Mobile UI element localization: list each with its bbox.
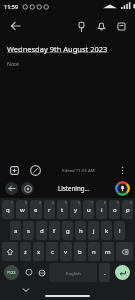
staticText: 6 xyxy=(78,201,80,205)
button[interactable]: c xyxy=(46,242,58,261)
staticText: e xyxy=(34,206,38,214)
staticText: x xyxy=(37,248,41,256)
staticText: m xyxy=(105,248,111,256)
staticText: d xyxy=(40,227,44,235)
button[interactable]: t xyxy=(57,200,68,219)
staticText: u xyxy=(87,206,91,214)
staticText: q xyxy=(6,206,10,214)
staticText: 2 xyxy=(25,201,27,205)
button[interactable]: Back xyxy=(6,17,24,35)
staticText: a xyxy=(14,227,18,235)
button[interactable]: Emoji xyxy=(23,263,34,282)
button[interactable]: f xyxy=(49,221,60,240)
button[interactable]: Colour xyxy=(27,162,43,178)
staticText: z xyxy=(24,248,27,256)
button[interactable]: p xyxy=(122,200,133,219)
staticText: l xyxy=(119,227,121,235)
button[interactable]: u xyxy=(83,200,94,219)
button[interactable]: Translate xyxy=(36,263,47,282)
staticText: . xyxy=(104,269,106,277)
other: Enter xyxy=(115,265,130,280)
button[interactable]: Microphone xyxy=(115,181,130,196)
button[interactable]: Close voice input xyxy=(5,182,18,195)
staticText: g xyxy=(66,227,70,235)
button[interactable]: n xyxy=(88,242,100,261)
button[interactable]: Shift xyxy=(2,242,18,261)
staticText: h xyxy=(79,227,83,235)
button[interactable]: Add xyxy=(6,162,22,178)
staticText: b xyxy=(78,248,82,256)
button[interactable]: Reminder xyxy=(93,18,109,34)
button[interactable]: a xyxy=(10,221,21,240)
staticText: 1 xyxy=(11,201,13,205)
staticText: k xyxy=(105,227,109,235)
staticText: r xyxy=(48,206,51,214)
button[interactable]: o xyxy=(109,200,120,219)
button[interactable]: q xyxy=(2,200,14,219)
button[interactable]: Pin xyxy=(73,18,89,34)
staticText: p xyxy=(126,206,130,214)
staticText: j xyxy=(93,227,95,235)
button[interactable]: m xyxy=(102,242,114,261)
button[interactable]: r xyxy=(44,200,55,219)
button[interactable]: . xyxy=(99,263,110,282)
staticText: y xyxy=(74,206,78,214)
button[interactable]: w xyxy=(16,200,28,219)
button[interactable]: Wednesday 9th August 2023 xyxy=(7,39,128,162)
staticText: 11:59 xyxy=(4,3,19,10)
staticText: c xyxy=(51,248,54,256)
button[interactable]: Enter xyxy=(112,263,133,282)
button[interactable]: b xyxy=(74,242,86,261)
staticText: Wednesday 9th August 2023 xyxy=(7,44,108,54)
staticText: 0 xyxy=(130,201,132,205)
button[interactable]: l xyxy=(114,221,125,240)
staticText: English xyxy=(66,270,81,276)
button[interactable]: y xyxy=(70,200,81,219)
button[interactable]: v xyxy=(60,242,72,261)
staticText: o xyxy=(113,206,117,214)
button[interactable]: g xyxy=(62,221,73,240)
button[interactable]: d xyxy=(36,221,47,240)
button[interactable]: Archive xyxy=(113,18,129,34)
button[interactable]: i xyxy=(96,200,107,219)
button[interactable]: e xyxy=(30,200,42,219)
button[interactable]: s xyxy=(23,221,34,240)
button[interactable]: z xyxy=(20,242,31,261)
staticText: s xyxy=(27,227,30,235)
staticText: ?123 xyxy=(7,270,16,275)
button[interactable]: x xyxy=(33,242,44,261)
staticText: v xyxy=(64,248,68,256)
button[interactable]: More options xyxy=(115,163,129,177)
button[interactable]: j xyxy=(88,221,99,240)
button[interactable]: Backspace xyxy=(116,242,133,261)
staticText: 5 xyxy=(65,201,67,205)
button[interactable]: English xyxy=(49,263,97,282)
staticText: f xyxy=(53,227,56,235)
button[interactable]: Voice settings xyxy=(21,182,34,195)
staticText: 8 xyxy=(104,201,106,205)
staticText: i xyxy=(101,206,103,214)
staticText: Edited 11:55 AM xyxy=(62,167,95,173)
staticText: Listening… xyxy=(58,184,90,192)
button[interactable]: k xyxy=(101,221,112,240)
staticText: w xyxy=(20,206,25,214)
button[interactable]: h xyxy=(75,221,86,240)
staticText: n xyxy=(92,248,96,256)
staticText: t xyxy=(61,206,64,214)
staticText: 3 xyxy=(39,201,41,205)
staticText: 9 xyxy=(117,201,119,205)
staticText: Note xyxy=(7,60,19,67)
staticText: 4 xyxy=(52,201,54,205)
staticText: 7 xyxy=(91,201,93,205)
button[interactable]: ?123 xyxy=(2,263,21,282)
